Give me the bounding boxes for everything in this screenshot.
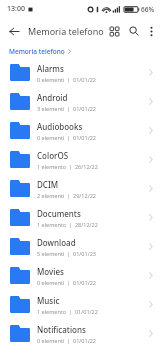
button[interactable]: Movies <box>0 261 161 290</box>
staticText: 1 elemento | 26/12/22 <box>37 163 98 170</box>
button[interactable]: More options <box>144 21 158 41</box>
staticText: Audiobooks <box>37 121 83 132</box>
button[interactable]: Memoria telefono <box>9 47 71 56</box>
button[interactable]: Android <box>0 87 161 116</box>
staticText: Music <box>37 295 60 306</box>
staticText: 1 elemento | 28/12/22 <box>37 221 98 228</box>
button[interactable]: Search <box>124 21 144 41</box>
staticText: 13:00 <box>7 4 25 14</box>
staticText: Download <box>37 237 76 248</box>
staticText: Memoria telefono <box>9 47 65 56</box>
staticText: Memoria telefono <box>28 25 104 37</box>
staticText: 3 elementi | 01/01/22 <box>37 105 96 112</box>
staticText: ColorOS <box>37 150 69 161</box>
staticText: 66% <box>141 5 154 14</box>
staticText: Documents <box>37 208 81 219</box>
staticText: 5 elementi | 01/01/23 <box>37 250 96 257</box>
staticText: 2 elementi | 29/12/22 <box>37 192 96 199</box>
staticText: Android <box>37 92 68 103</box>
staticText: DCIM <box>37 179 59 190</box>
staticText: 1 elemento | 01/01/22 <box>37 308 98 315</box>
staticText: Movies <box>37 266 64 277</box>
staticText: 0 elementi | 01/01/22 <box>37 337 96 344</box>
button[interactable]: Music <box>0 290 161 319</box>
button[interactable]: Audiobooks <box>0 116 161 145</box>
staticText: 0 elementi | 01/01/22 <box>37 134 96 141</box>
staticText: 0 elementi | 01/01/22 <box>37 76 96 83</box>
button[interactable]: Download <box>0 232 161 261</box>
button[interactable]: Notifications <box>0 319 161 348</box>
staticText: Alarms <box>37 63 64 74</box>
staticText: Notifications <box>37 324 86 335</box>
staticText: 0 elementi | 01/01/22 <box>37 279 96 286</box>
button[interactable]: Documents <box>0 203 161 232</box>
button[interactable]: DCIM <box>0 174 161 203</box>
button[interactable]: Grid view <box>104 21 124 41</box>
button[interactable]: Back <box>4 21 24 41</box>
button[interactable]: Alarms <box>0 58 161 87</box>
button[interactable]: ColorOS <box>0 145 161 174</box>
